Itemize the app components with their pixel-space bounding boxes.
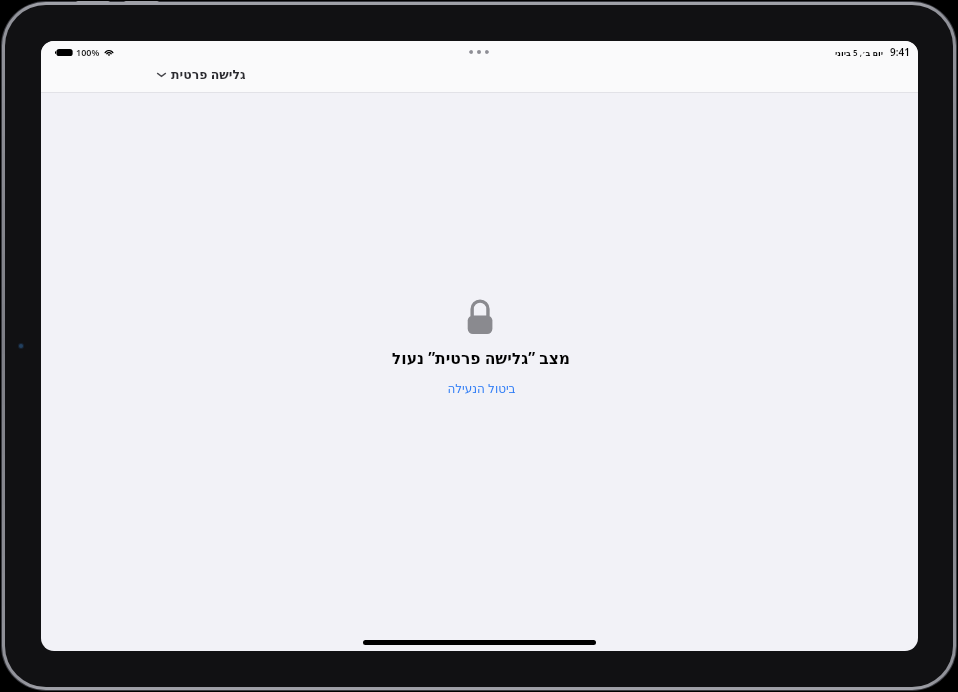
button[interactable]: Multitasking controls <box>469 50 489 54</box>
button[interactable]: ביטול הנעילה <box>437 378 526 398</box>
staticText: יום ב׳, 5 ביוני <box>835 47 884 58</box>
button[interactable]: גלישה פרטית <box>151 62 252 87</box>
staticText: מצב ”גלישה פרטית” נעול <box>231 347 731 368</box>
staticText: 9:41 <box>890 45 910 59</box>
staticText: 100% <box>76 46 100 58</box>
staticText: גלישה פרטית <box>171 66 246 83</box>
other: Private Browsing locked <box>461 294 499 338</box>
staticText: ביטול הנעילה <box>447 380 516 396</box>
